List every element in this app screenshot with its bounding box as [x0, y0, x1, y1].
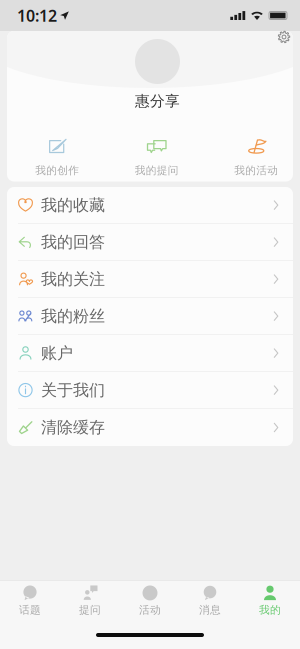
- staticText: 10:12: [17, 5, 57, 26]
- staticText: 我的: [259, 603, 281, 616]
- staticText: 我的粉丝: [41, 306, 105, 326]
- staticText: 消息: [199, 603, 221, 616]
- staticText: 我的关注: [41, 269, 105, 289]
- staticText: 我的创作: [35, 164, 79, 177]
- button[interactable]: 账户: [7, 335, 293, 372]
- staticText: 清除缓存: [41, 418, 105, 437]
- button[interactable]: 关于我们: [7, 372, 293, 409]
- staticText: 账户: [41, 343, 73, 363]
- staticText: 我的收藏: [41, 195, 105, 215]
- button[interactable]: 我的收藏: [7, 187, 293, 224]
- staticText: 关于我们: [41, 380, 105, 400]
- button[interactable]: 提问: [60, 585, 120, 616]
- staticText: 话题: [19, 603, 41, 616]
- staticText: 我的回答: [41, 232, 105, 252]
- button[interactable]: 我的: [240, 585, 300, 616]
- staticText: 我的提问: [135, 164, 179, 177]
- button[interactable]: 我的粉丝: [7, 298, 293, 335]
- staticText: 活动: [139, 603, 161, 616]
- button[interactable]: 我的活动: [206, 138, 300, 177]
- button[interactable]: 我的提问: [107, 138, 206, 177]
- button[interactable]: 清除缓存: [7, 409, 293, 446]
- button[interactable]: 消息: [180, 585, 240, 616]
- staticText: 提问: [79, 603, 101, 616]
- button[interactable]: 话题: [0, 585, 60, 616]
- button[interactable]: 活动: [120, 585, 180, 616]
- staticText: 惠分享: [135, 92, 180, 110]
- button[interactable]: 我的回答: [7, 224, 293, 261]
- button[interactable]: Settings: [274, 27, 294, 47]
- button[interactable]: 我的关注: [7, 261, 293, 298]
- staticText: 我的活动: [234, 164, 278, 177]
- button[interactable]: 我的创作: [7, 138, 107, 177]
